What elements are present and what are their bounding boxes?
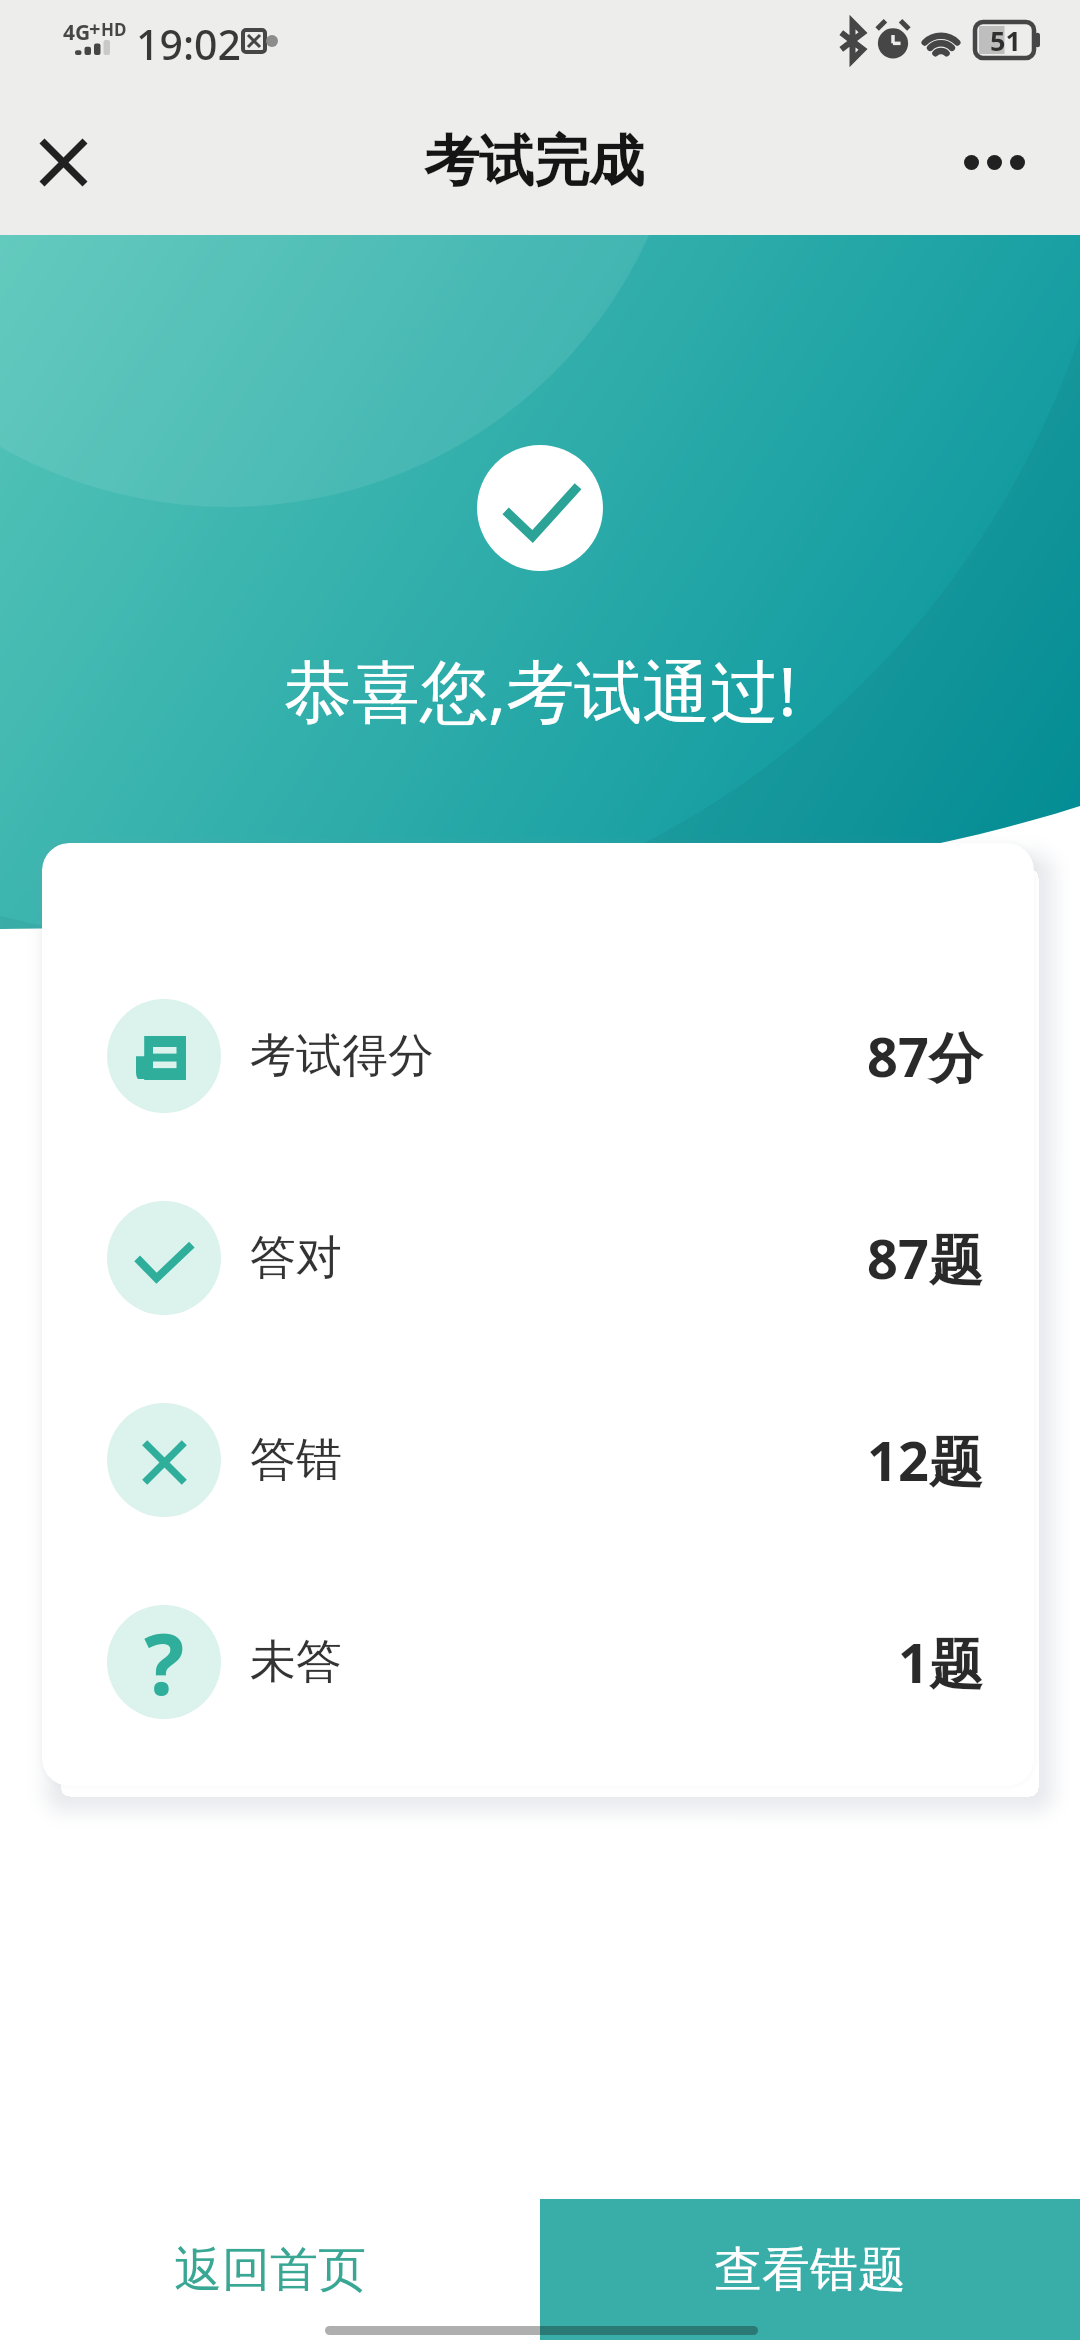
staticText: 答对 (250, 1229, 342, 1287)
button[interactable]: 查看错题 (540, 2199, 1080, 2340)
staticText: 答错 (250, 1431, 342, 1489)
staticText: 1题 (898, 1625, 983, 1699)
staticText: 查看错题 (714, 2240, 906, 2300)
staticText: HD (101, 18, 127, 41)
button[interactable]: 返回首页 (0, 2199, 540, 2340)
staticText: 4G (63, 18, 91, 47)
staticText: 12题 (867, 1423, 983, 1497)
staticText: 恭喜您,考试通过! (284, 643, 797, 736)
staticText: 19:02 (136, 16, 241, 72)
staticText: 考试完成 (424, 127, 644, 196)
staticText: 考试得分 (250, 1027, 434, 1085)
staticText: 87题 (867, 1221, 983, 1295)
staticText: 87分 (867, 1019, 983, 1093)
button[interactable]: Close (22, 121, 104, 203)
button[interactable]: More options (964, 121, 1025, 203)
staticText: + (89, 15, 101, 42)
staticText: 未答 (250, 1633, 342, 1691)
staticText: 返回首页 (174, 2240, 366, 2300)
staticText: 51 (990, 22, 1021, 58)
staticText: ? (144, 1605, 185, 1719)
